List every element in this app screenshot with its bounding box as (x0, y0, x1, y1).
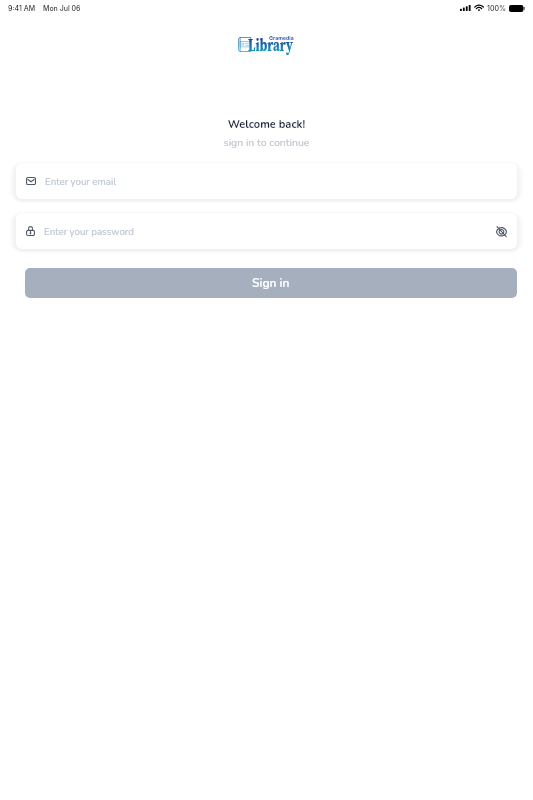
button[interactable]: Enter your email (16, 163, 517, 199)
staticText: Mon Jul 06 (43, 4, 81, 12)
other: Wi-Fi (475, 6, 483, 11)
staticText: Enter your email (45, 175, 117, 188)
other: Gramedia Library (237, 34, 303, 58)
button[interactable]: Show password (493, 223, 509, 239)
other: Battery (509, 5, 525, 12)
staticText: 100% (487, 4, 506, 12)
staticText: Enter your password (44, 225, 134, 238)
staticText: Gramedia (269, 35, 294, 42)
staticText: Welcome back! (0, 117, 533, 132)
button[interactable]: Sign in (25, 268, 517, 298)
button[interactable]: Enter your password (16, 213, 517, 249)
other: Cellular signal (460, 5, 471, 11)
staticText: sign in to continue (0, 135, 533, 149)
staticText: Sign in (252, 275, 290, 291)
staticText: 9:41 AM (8, 4, 36, 12)
staticText: Library (248, 33, 293, 57)
